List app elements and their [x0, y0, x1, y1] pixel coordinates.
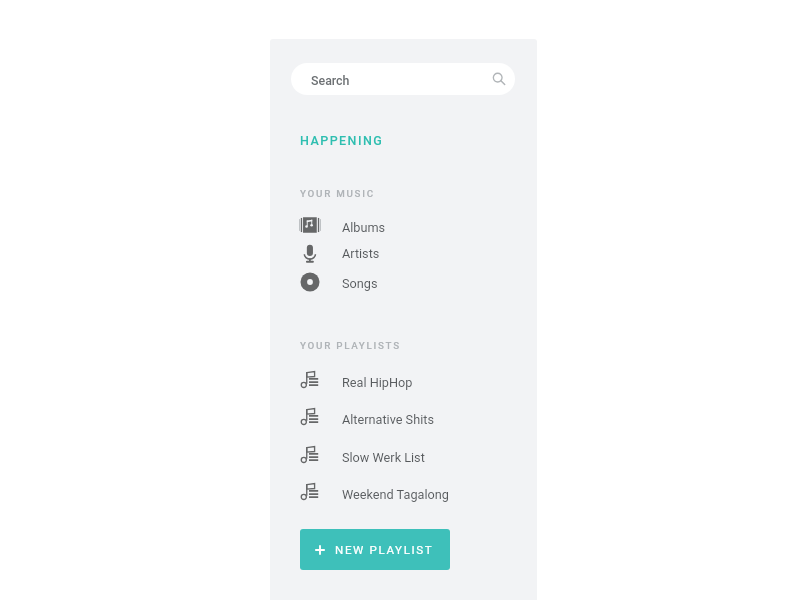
staticText: Albums	[342, 220, 386, 235]
staticText: Artists	[342, 246, 380, 261]
other: Songs	[299, 271, 321, 293]
staticText: HAPPENING	[300, 133, 384, 148]
staticText: Search	[311, 73, 350, 88]
staticText: YOUR MUSIC	[300, 188, 375, 199]
other: Playlist	[299, 408, 320, 429]
button[interactable]: Artists	[270, 237, 537, 265]
button[interactable]: Albums	[270, 211, 537, 239]
button[interactable]: Playlist	[270, 363, 537, 399]
other: Artists	[299, 240, 321, 262]
staticText: Songs	[342, 276, 378, 291]
other: Playlist	[299, 371, 320, 392]
staticText: Slow Werk List	[342, 450, 425, 465]
staticText: Weekend Tagalong	[342, 487, 449, 502]
button[interactable]: Playlist	[270, 438, 537, 474]
staticText: NEW PLAYLIST	[335, 543, 434, 557]
button[interactable]: Playlist	[270, 475, 537, 511]
other: Playlist	[299, 483, 320, 504]
button[interactable]: Songs	[270, 268, 537, 296]
other: Search	[492, 72, 506, 86]
button[interactable]: Playlist	[270, 400, 537, 436]
staticText: YOUR PLAYLISTS	[300, 340, 401, 351]
other: Playlist	[299, 446, 320, 467]
button[interactable]: Search	[291, 63, 515, 95]
staticText: Alternative Shits	[342, 412, 434, 427]
button[interactable]: NEW PLAYLIST	[300, 529, 450, 570]
staticText: Real HipHop	[342, 375, 413, 390]
other: Albums	[299, 214, 321, 236]
